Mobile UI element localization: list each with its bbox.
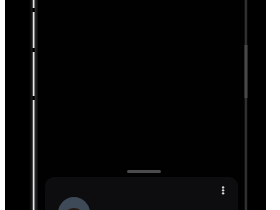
button[interactable]: Profile picture — [58, 197, 90, 210]
button[interactable]: Drag handle — [127, 170, 161, 173]
button[interactable] — [45, 177, 238, 210]
button[interactable]: Drag handle — [0, 0, 280, 210]
button[interactable]: More options — [215, 182, 233, 200]
